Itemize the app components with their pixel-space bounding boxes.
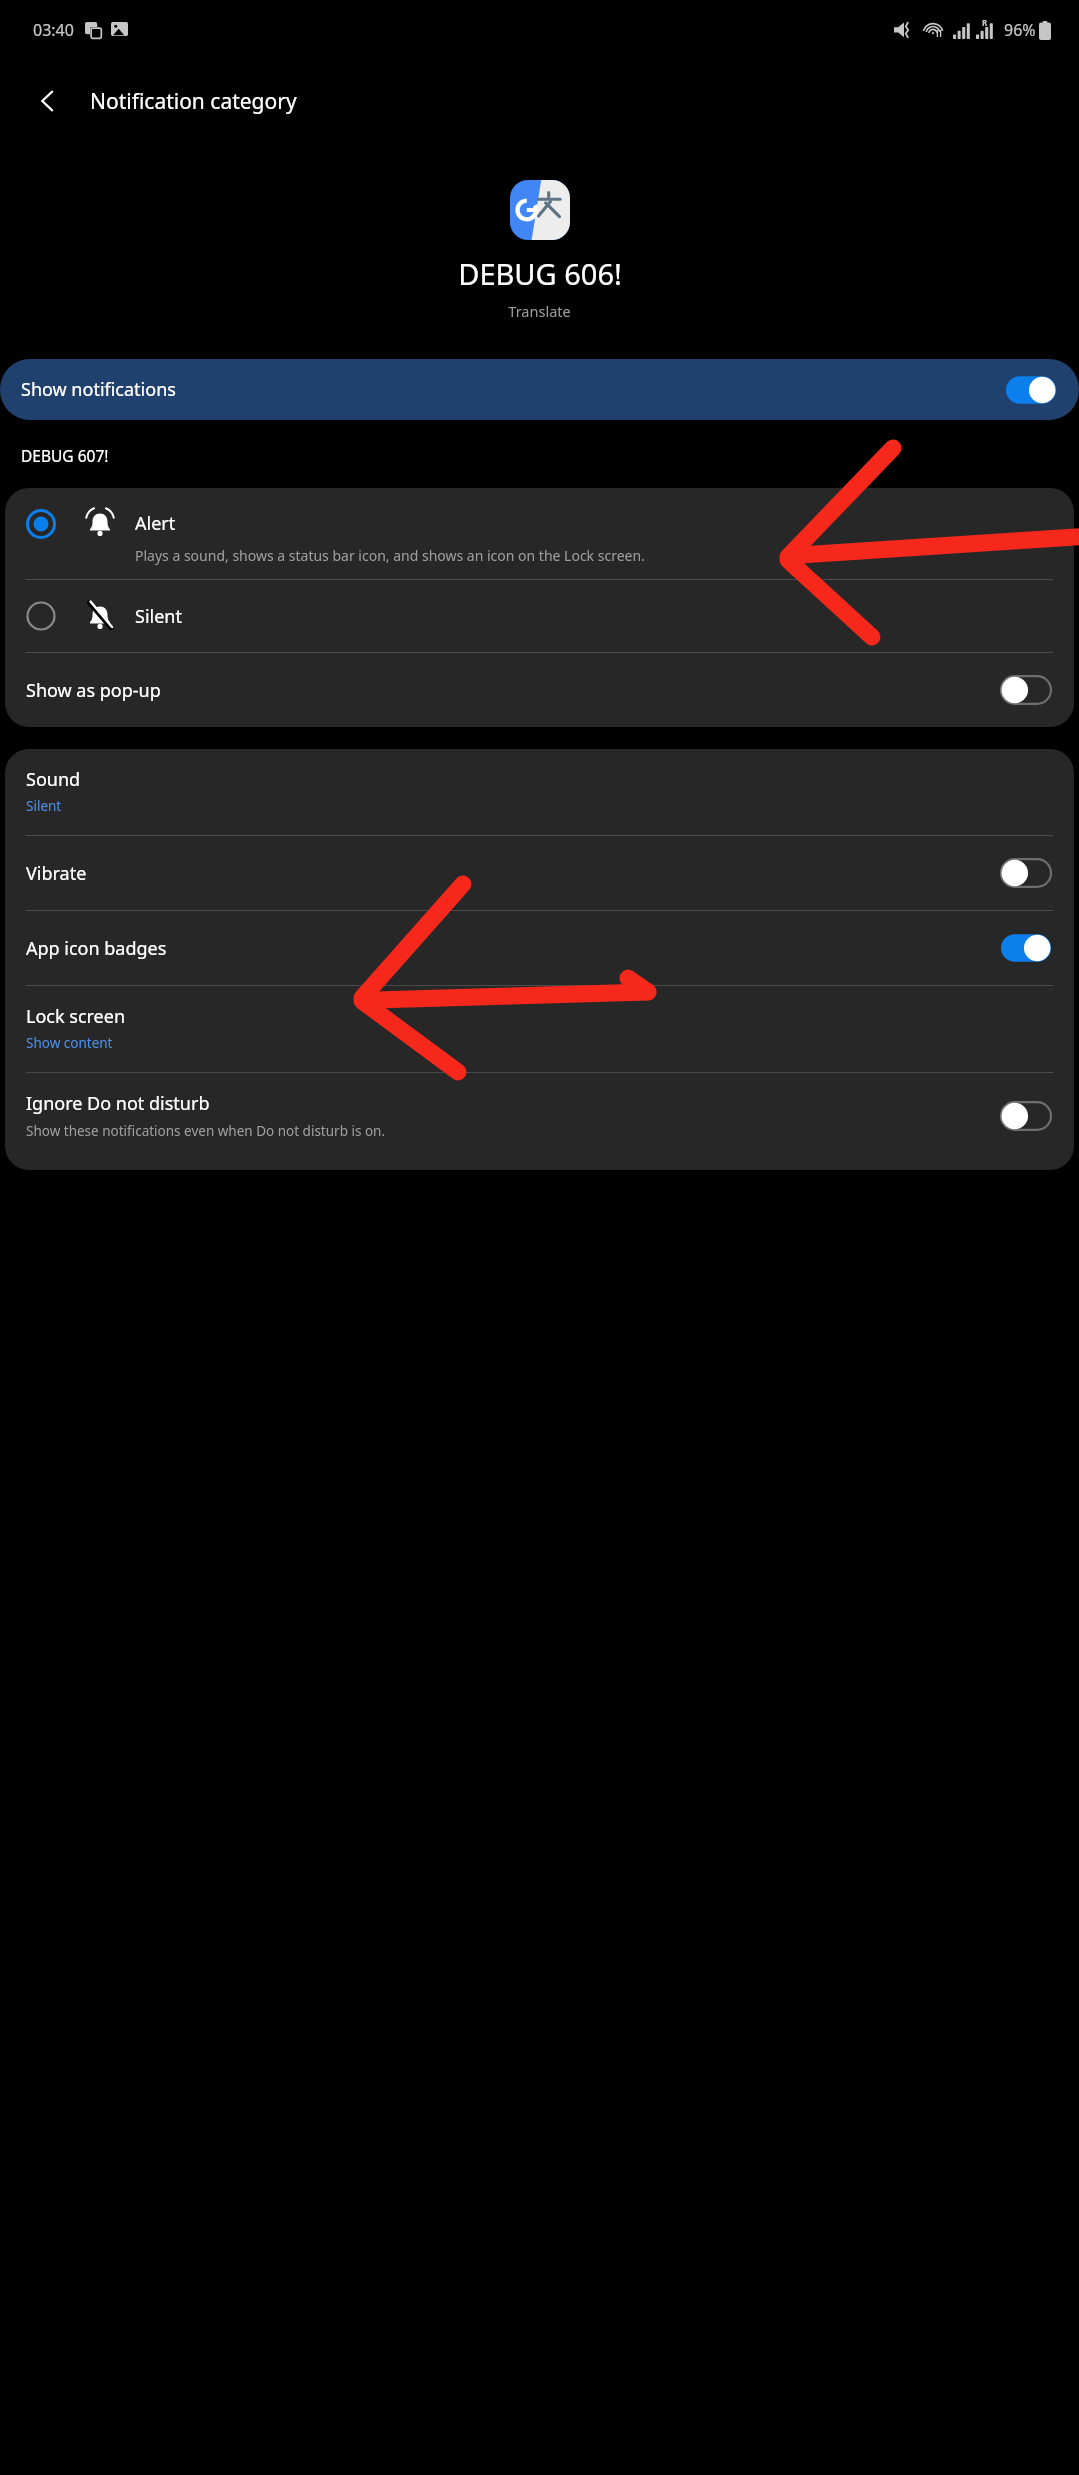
staticText: Lock screen — [26, 1004, 126, 1029]
staticText: Vibrate — [26, 861, 87, 886]
staticText: Alert — [135, 511, 176, 536]
staticText: Plays a sound, shows a status bar icon, … — [135, 546, 645, 565]
staticText: Notification category — [90, 87, 297, 116]
staticText: Sound — [26, 767, 81, 792]
button[interactable]: Sound — [5, 749, 1074, 835]
staticText: 96% — [1004, 19, 1036, 41]
button[interactable]: Vibrate — [5, 836, 1074, 910]
staticText: Show as pop-up — [26, 678, 161, 703]
button[interactable]: Radio button — [5, 580, 1074, 652]
staticText: DEBUG 606! — [458, 254, 622, 293]
button[interactable]: Ignore Do not disturb — [5, 1073, 1074, 1160]
staticText: DEBUG 607! — [21, 445, 109, 466]
staticText: Silent — [135, 604, 182, 629]
button[interactable]: Toggle on — [1001, 933, 1051, 963]
button[interactable]: Toggle off — [1001, 675, 1051, 705]
staticText: Ignore Do not disturb — [26, 1091, 210, 1116]
button[interactable]: Toggle off — [1001, 858, 1051, 888]
button[interactable]: Show notifications — [0, 359, 1079, 420]
staticText: Show content — [26, 1034, 113, 1052]
staticText: Silent — [26, 797, 62, 815]
staticText: Show these notifications even when Do no… — [26, 1122, 386, 1140]
button[interactable]: Show as pop-up — [5, 653, 1074, 727]
button[interactable]: Back — [22, 75, 74, 127]
staticText: App icon badges — [26, 936, 167, 961]
button[interactable]: Radio button — [26, 509, 56, 539]
staticText: Translate — [508, 301, 571, 321]
button[interactable]: App icon badges — [5, 911, 1074, 985]
button[interactable]: Radio button — [5, 488, 1074, 579]
button[interactable]: Lock screen — [5, 986, 1074, 1072]
button[interactable]: Toggle on — [1006, 375, 1056, 405]
staticText: R — [982, 17, 988, 28]
button[interactable]: Radio button — [26, 601, 56, 631]
button[interactable]: Toggle off — [1001, 1101, 1051, 1131]
staticText: Show notifications — [21, 377, 176, 402]
staticText: 03:40 — [33, 19, 74, 41]
